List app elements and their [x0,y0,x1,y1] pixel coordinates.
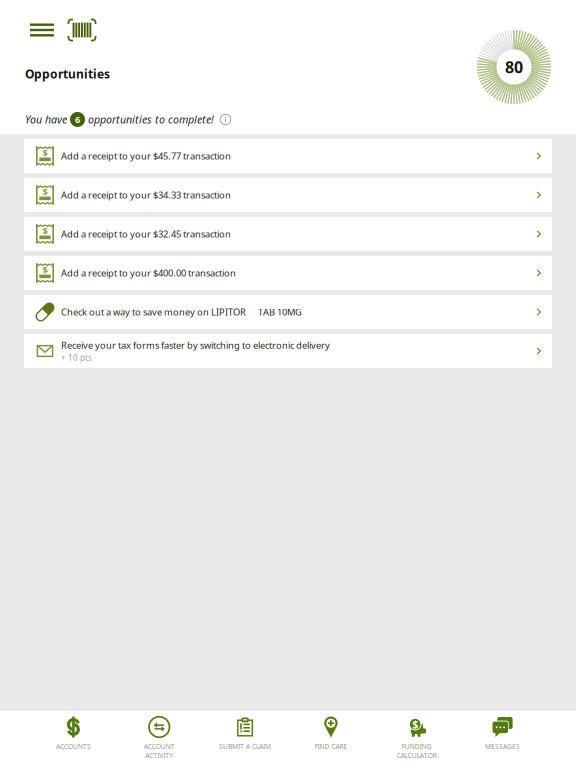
staticText: Add a receipt to your $400.00 transactio… [61,267,236,279]
button[interactable]: Menu [29,18,55,42]
button[interactable]: Wellness score 80 [477,30,551,104]
staticText: Check out a way to save money on LIPITOR [61,306,246,318]
staticText: ACCOUNT [144,742,175,751]
staticText: You have [25,112,70,127]
staticText: Receive your tax forms faster by switchi… [61,339,330,351]
button[interactable]: $ [24,217,552,251]
button[interactable]: Check out a way to save money on LIPITOR [24,295,552,329]
button[interactable]: Messages [460,711,545,768]
staticText: FUNDING [402,742,432,751]
staticText: SUBMIT A CLAIM [219,742,271,751]
button[interactable]: $ [24,178,552,212]
staticText: ACCOUNTS [56,742,91,751]
staticText: $ [42,264,47,276]
button[interactable]: Receive your tax forms faster by switchi… [24,334,552,368]
staticText: TAB 10MG [246,306,302,318]
staticText: $ [42,225,47,237]
button[interactable]: Scan member card [68,18,96,42]
button[interactable]: Account Activity [116,711,202,768]
button[interactable]: $ [24,256,552,290]
staticText: ACTIVITY [145,751,173,760]
button[interactable]: Submit a Claim [202,711,288,768]
button[interactable]: $ [24,139,552,173]
staticText: Add a receipt to your $32.45 transaction [61,228,231,240]
staticText: MESSAGES [485,742,520,751]
staticText: 6 [75,113,80,126]
staticText: opportunities to complete! [85,112,214,127]
staticText: + 10 pts [61,352,92,363]
staticText: Opportunities [25,66,110,82]
staticText: Add a receipt to your $34.33 transaction [61,189,231,201]
button[interactable]: Find Care [288,711,374,768]
staticText: CALCULATOR [397,751,437,760]
staticText: Add a receipt to your $45.77 transaction [61,150,231,162]
staticText: $ [412,717,418,731]
staticText: 80 [505,56,523,78]
button[interactable]: Funding Calculator [374,711,460,768]
staticText: $ [42,147,47,159]
staticText: $ [42,186,47,198]
staticText: FIND CARE [314,742,347,751]
button[interactable]: Accounts [30,711,116,768]
